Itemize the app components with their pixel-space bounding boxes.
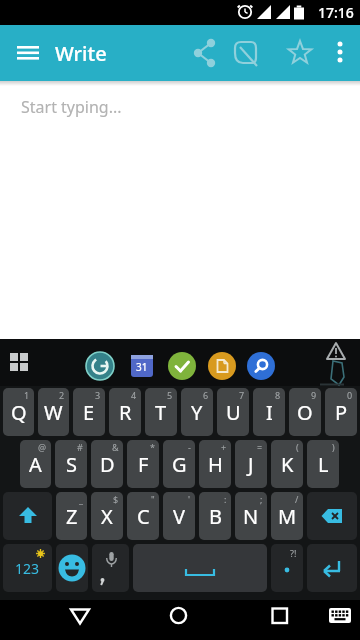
staticText: ?! bbox=[290, 547, 297, 559]
button[interactable] bbox=[133, 544, 267, 592]
staticText: = bbox=[257, 441, 263, 453]
staticText: Q bbox=[11, 399, 27, 426]
button[interactable]: Q bbox=[3, 388, 34, 436]
staticText: $ bbox=[113, 493, 119, 505]
button[interactable]: N bbox=[235, 492, 267, 540]
staticText: 0 bbox=[347, 389, 353, 401]
staticText: 31 bbox=[136, 360, 148, 374]
button[interactable] bbox=[0, 339, 40, 386]
button[interactable]: W bbox=[38, 388, 69, 436]
staticText: N bbox=[243, 503, 259, 530]
button[interactable] bbox=[307, 544, 357, 592]
button[interactable]: L bbox=[307, 440, 339, 488]
staticText: X bbox=[101, 503, 113, 530]
button[interactable]: A bbox=[20, 440, 51, 488]
button[interactable]: H bbox=[199, 440, 231, 488]
staticText: S bbox=[66, 451, 77, 478]
button[interactable] bbox=[208, 352, 236, 380]
button[interactable] bbox=[92, 544, 129, 592]
button[interactable]: E bbox=[73, 388, 105, 436]
staticText: ) bbox=[332, 441, 335, 453]
button[interactable]: S bbox=[55, 440, 87, 488]
staticText: 17:16 bbox=[318, 3, 354, 22]
staticText: Y bbox=[191, 399, 203, 426]
button[interactable] bbox=[0, 25, 56, 81]
button[interactable]: ?! bbox=[271, 544, 303, 592]
staticText: K bbox=[281, 451, 294, 478]
staticText: " bbox=[151, 493, 155, 505]
staticText: : bbox=[224, 493, 227, 505]
staticText: G bbox=[172, 451, 187, 478]
staticText: 123 bbox=[15, 559, 40, 578]
staticText: 3 bbox=[95, 389, 101, 401]
staticText: L bbox=[318, 451, 329, 478]
button[interactable]: 31 bbox=[129, 353, 155, 379]
button[interactable]: X bbox=[91, 492, 123, 540]
button[interactable] bbox=[185, 35, 221, 71]
staticText: A bbox=[29, 451, 42, 478]
button[interactable]: J bbox=[235, 440, 267, 488]
button[interactable]: 123 bbox=[3, 544, 52, 592]
staticText: C bbox=[137, 503, 150, 530]
button[interactable] bbox=[318, 339, 360, 386]
staticText: W bbox=[44, 399, 63, 426]
staticText: R bbox=[119, 399, 132, 426]
button[interactable]: P bbox=[325, 388, 357, 436]
button[interactable]: B bbox=[199, 492, 231, 540]
button[interactable] bbox=[256, 600, 304, 640]
staticText: 1 bbox=[24, 389, 30, 401]
button[interactable]: G bbox=[163, 440, 195, 488]
staticText: B bbox=[209, 503, 222, 530]
button[interactable] bbox=[322, 600, 360, 640]
staticText: ' bbox=[188, 493, 191, 505]
staticText: * bbox=[150, 441, 155, 453]
staticText: 8 bbox=[275, 389, 281, 401]
button[interactable]: Z bbox=[56, 492, 87, 540]
button[interactable] bbox=[227, 35, 263, 71]
staticText: T bbox=[155, 399, 167, 426]
staticText: J bbox=[248, 451, 254, 478]
staticText: O bbox=[297, 399, 313, 426]
staticText: F bbox=[138, 451, 149, 478]
staticText: H bbox=[208, 451, 223, 478]
staticText: Z bbox=[66, 503, 78, 530]
button[interactable] bbox=[307, 492, 357, 540]
button[interactable] bbox=[168, 352, 196, 380]
staticText: P bbox=[335, 399, 348, 426]
button[interactable] bbox=[156, 600, 204, 640]
staticText: 7 bbox=[239, 389, 245, 401]
staticText: 9 bbox=[311, 389, 317, 401]
staticText: - bbox=[188, 441, 191, 453]
button[interactable]: U bbox=[217, 388, 249, 436]
staticText: @ bbox=[38, 441, 47, 453]
staticText: ; bbox=[260, 493, 263, 505]
button[interactable] bbox=[247, 352, 275, 380]
button[interactable]: C bbox=[127, 492, 159, 540]
button[interactable] bbox=[3, 492, 52, 540]
staticText: 2 bbox=[59, 389, 65, 401]
button[interactable]: K bbox=[271, 440, 303, 488]
button[interactable] bbox=[86, 352, 114, 380]
button[interactable]: I bbox=[253, 388, 285, 436]
staticText: U bbox=[226, 399, 241, 426]
staticText: 5 bbox=[167, 389, 173, 401]
button[interactable]: O bbox=[289, 388, 321, 436]
button[interactable]: Start typing... bbox=[0, 81, 360, 339]
button[interactable]: V bbox=[163, 492, 195, 540]
staticText: + bbox=[221, 441, 227, 453]
button[interactable]: F bbox=[127, 440, 159, 488]
button[interactable]: M bbox=[271, 492, 303, 540]
button[interactable] bbox=[282, 34, 318, 70]
staticText: & bbox=[112, 441, 119, 453]
button[interactable]: Y bbox=[181, 388, 213, 436]
button[interactable]: T bbox=[145, 388, 177, 436]
staticText: V bbox=[173, 503, 185, 530]
button[interactable]: R bbox=[109, 388, 141, 436]
staticText: D bbox=[100, 451, 115, 478]
button[interactable] bbox=[56, 600, 104, 640]
staticText: / bbox=[295, 493, 299, 505]
staticText: 6 bbox=[203, 389, 209, 401]
button[interactable] bbox=[326, 35, 356, 71]
button[interactable] bbox=[56, 544, 88, 592]
button[interactable]: D bbox=[91, 440, 123, 488]
